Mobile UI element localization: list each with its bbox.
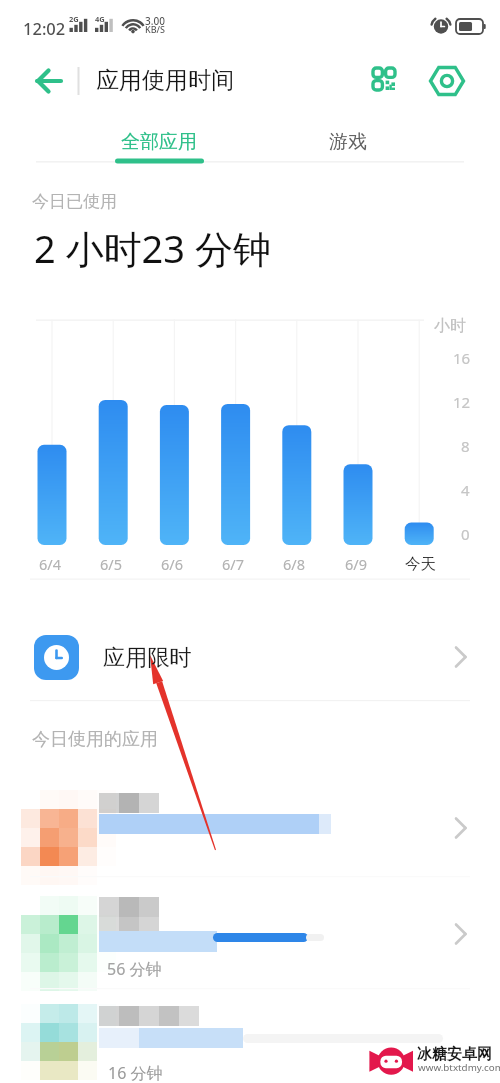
staticText: 冰糖安卓网 (417, 1045, 492, 1064)
button[interactable] (0, 760, 500, 876)
staticText: 6/6 (161, 554, 183, 574)
staticText: 56 分钟 (107, 958, 162, 980)
staticText: 6/5 (100, 554, 122, 574)
button[interactable]: Settings (425, 59, 469, 103)
staticText: 应用限时 (103, 644, 192, 672)
staticText: 0 (461, 524, 470, 544)
staticText: 3.00 (145, 14, 165, 28)
staticText: 今日使用的应用 (32, 728, 158, 751)
staticText: 6/4 (39, 554, 61, 574)
staticText: 6/7 (222, 554, 244, 574)
staticText: 今天 (405, 554, 436, 574)
button[interactable] (0, 612, 500, 1083)
button[interactable] (0, 876, 500, 988)
button[interactable] (0, 988, 500, 1083)
staticText: 4G (95, 14, 105, 24)
staticText: 应用使用时间 (96, 66, 234, 95)
staticText: 16 分钟 (108, 1062, 163, 1083)
button[interactable]: Back (26, 59, 72, 105)
staticText: 16 (453, 348, 471, 368)
staticText: 今日已使用 (32, 191, 117, 212)
staticText: 游戏 (329, 130, 367, 154)
staticText: KB/S (145, 23, 165, 35)
staticText: www.btxtdmy.com (418, 1061, 500, 1074)
button[interactable] (0, 110, 250, 165)
staticText: 小时 (434, 316, 466, 336)
button[interactable] (250, 110, 500, 165)
staticText: 8 (461, 436, 470, 456)
staticText: 12 (453, 392, 471, 412)
staticText: 12:02 (23, 17, 66, 39)
button[interactable]: Scan QR code (362, 59, 406, 103)
staticText: 全部应用 (121, 130, 197, 154)
staticText: 2G (69, 14, 79, 24)
staticText: 4 (461, 480, 470, 500)
staticText: 2 小时23 分钟 (34, 222, 271, 274)
staticText: 6/8 (283, 554, 305, 574)
staticText: 6/9 (345, 554, 367, 574)
